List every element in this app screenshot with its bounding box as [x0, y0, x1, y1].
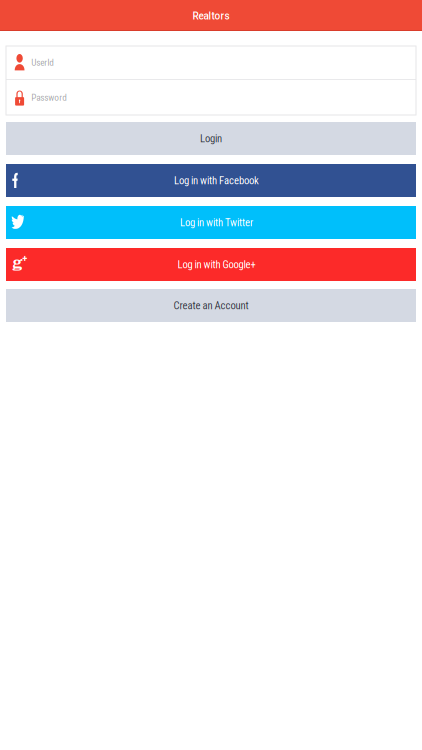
staticText: Login	[200, 132, 222, 145]
staticText: Log in with Facebook	[174, 174, 259, 187]
button[interactable]: Password	[6, 80, 416, 115]
button[interactable]: g	[6, 248, 416, 281]
staticText: Log in with Google+	[177, 258, 255, 271]
button[interactable]: Login	[6, 122, 416, 155]
staticText: Password	[31, 92, 67, 103]
staticText: g	[12, 254, 22, 271]
button[interactable]: Create an Account	[6, 289, 416, 322]
staticText: Realtors	[192, 10, 229, 22]
staticText: Create an Account	[173, 299, 248, 312]
staticText: UserId	[31, 57, 54, 68]
staticText: Log in with Twitter	[180, 216, 253, 229]
button[interactable]: Log in with Twitter	[6, 206, 416, 239]
staticText: +	[22, 253, 27, 264]
button[interactable]: UserId	[6, 46, 416, 79]
button[interactable]: Log in with Facebook	[6, 164, 416, 197]
